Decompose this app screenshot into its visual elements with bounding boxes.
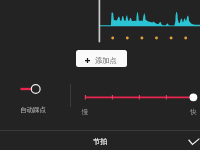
button[interactable]: 自动踩点 <box>16 83 58 113</box>
staticText: 节拍 <box>93 137 108 146</box>
staticText: 添加点 <box>95 56 117 65</box>
staticText: 自动踩点 <box>20 106 46 114</box>
button[interactable] <box>78 88 200 106</box>
button[interactable]: 添加点 <box>76 50 127 67</box>
button[interactable]: Confirm <box>180 130 200 150</box>
staticText: 快 <box>190 108 197 116</box>
staticText: 慢 <box>82 108 89 116</box>
